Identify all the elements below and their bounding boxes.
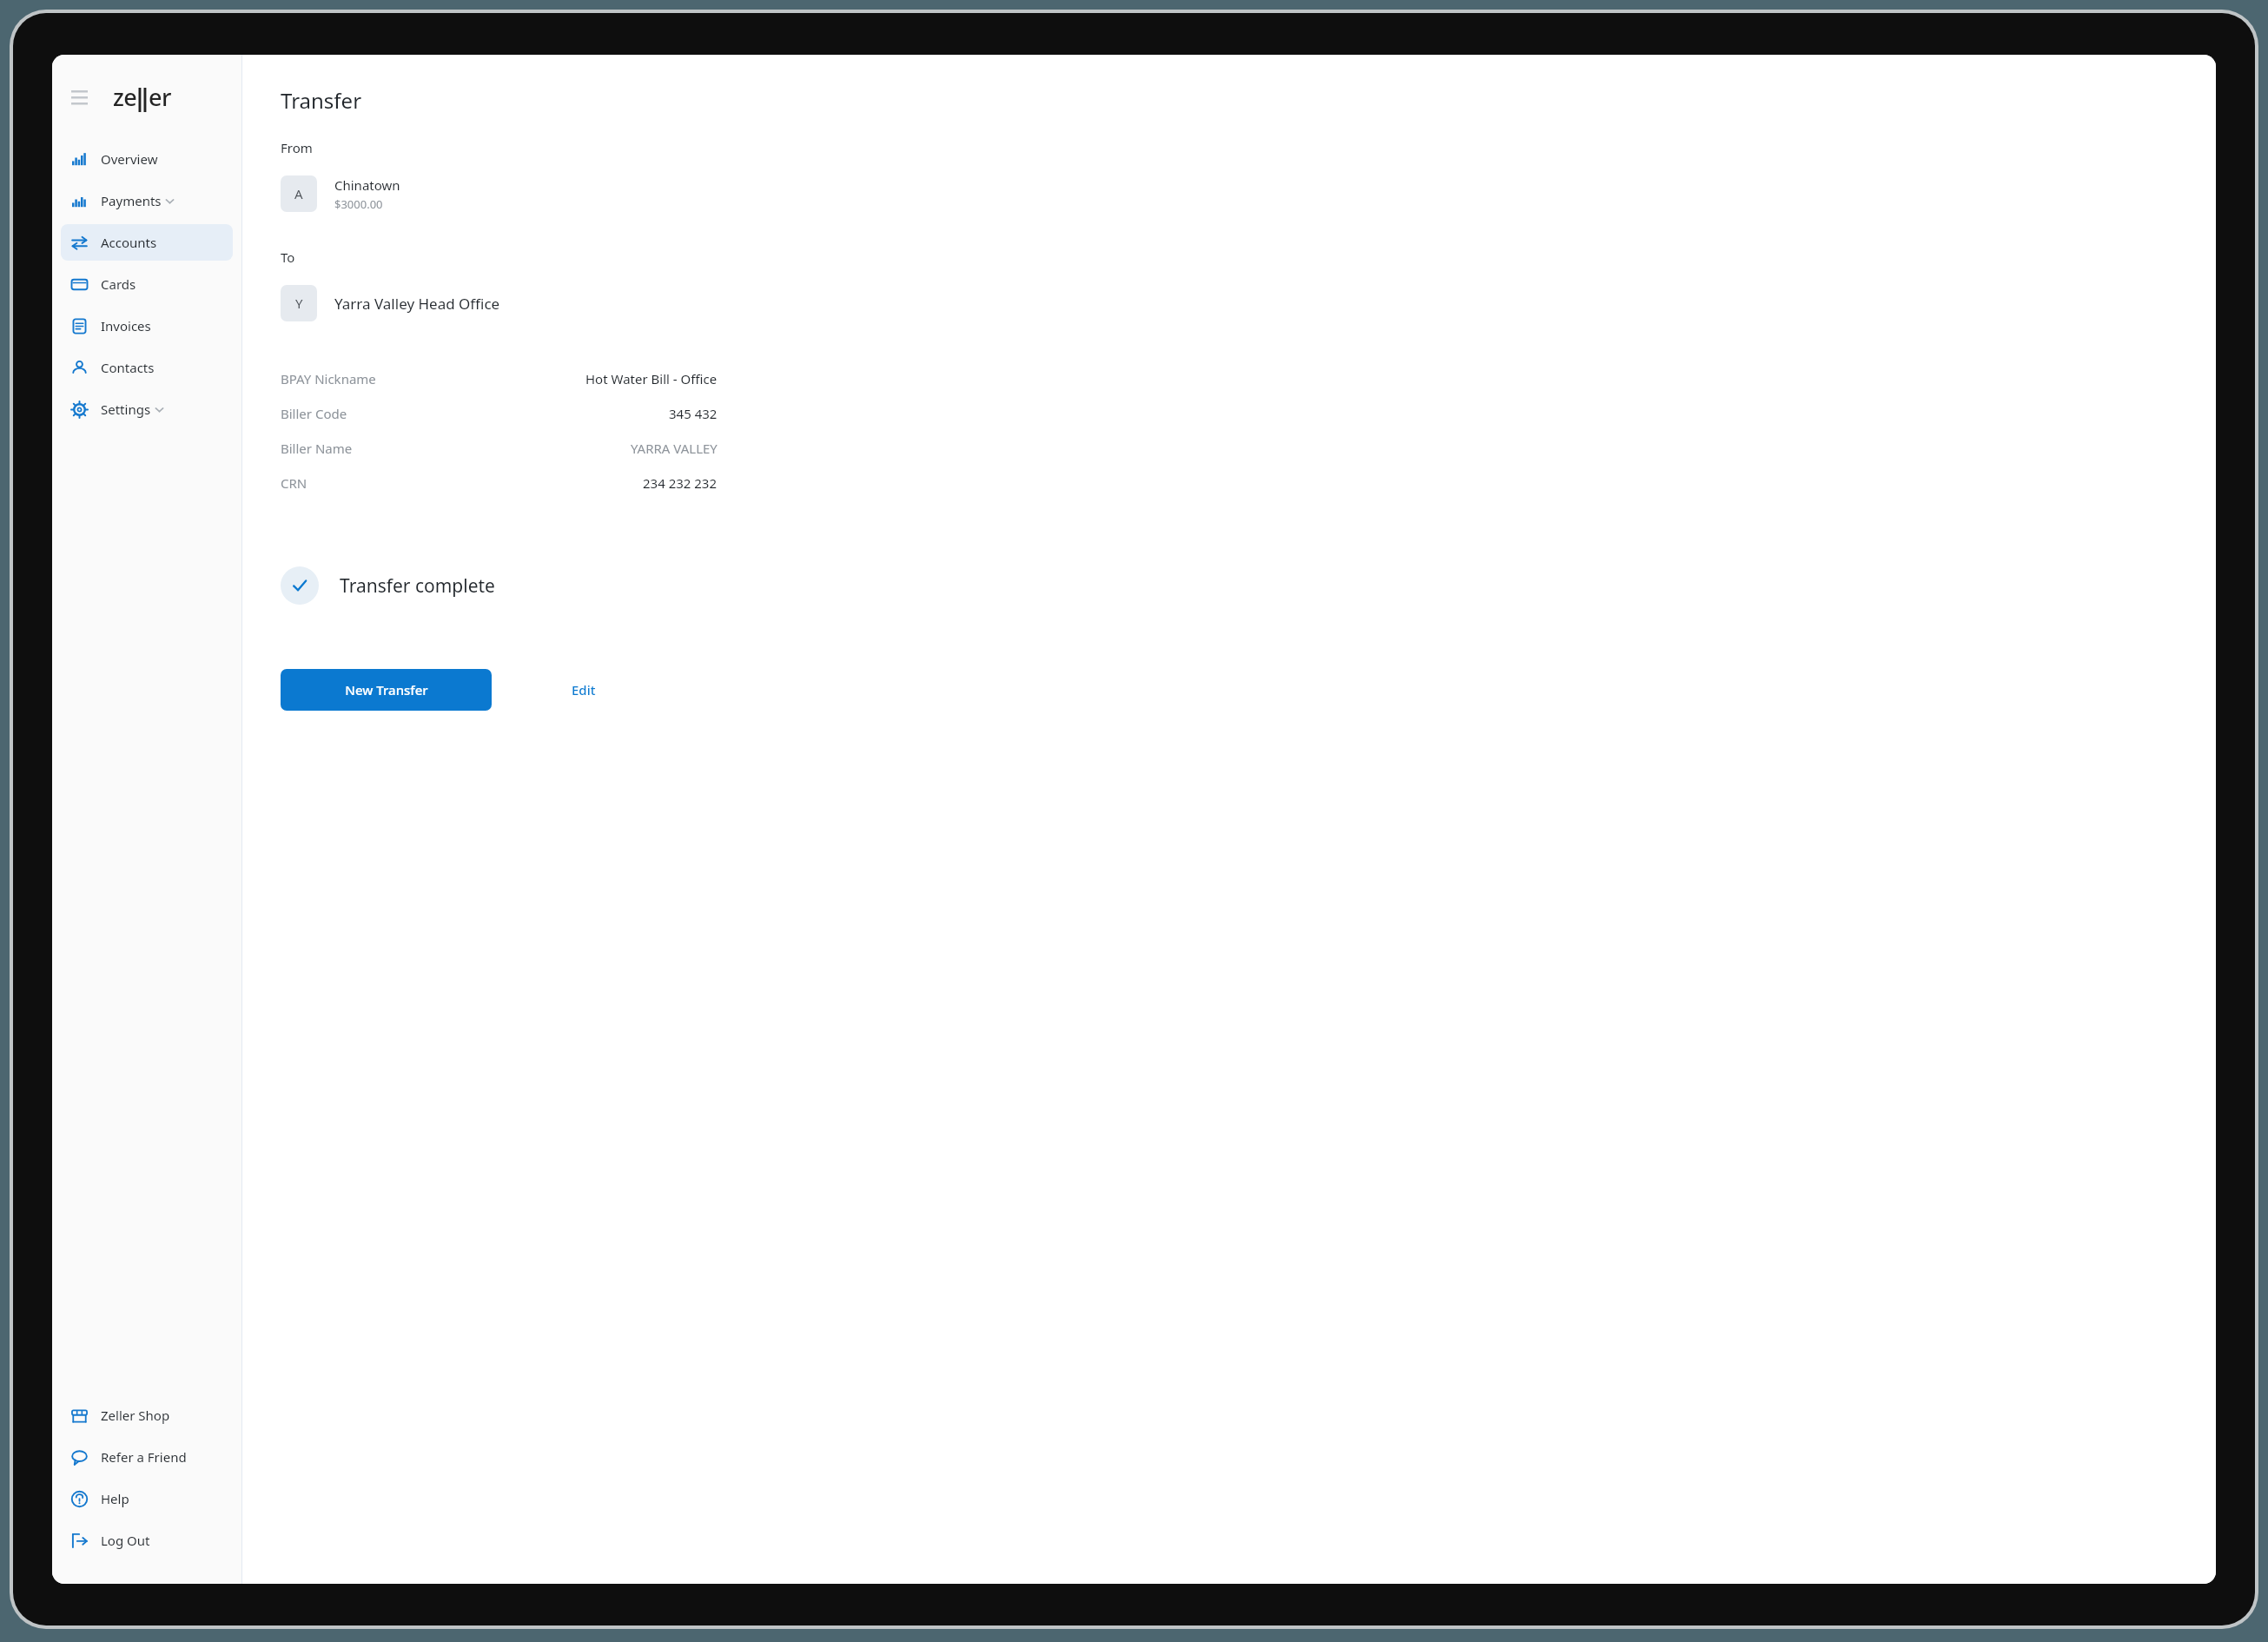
staticText: Biller Name [281,440,353,457]
staticText: YARRA VALLEY [631,440,717,457]
button[interactable]: Help [61,1480,233,1517]
staticText: Contacts [101,359,155,376]
staticText: Invoices [101,317,151,334]
staticText: BPAY Nickname [281,370,376,387]
staticText: 345 432 [669,405,717,422]
staticText: 234 232 232 [643,474,717,492]
staticText: Overview [101,150,158,168]
staticText: Hot Water Bill - Office [585,370,717,387]
staticText: er [149,81,171,113]
staticText: Cards [101,275,136,293]
staticText: Refer a Friend [101,1448,187,1466]
button[interactable]: Refer a Friend [61,1439,233,1475]
button[interactable]: Log Out [61,1522,233,1559]
button[interactable]: Menu [64,82,94,111]
staticText: Zeller Shop [101,1407,170,1424]
staticText: Payments [101,192,162,209]
button[interactable]: Zeller Shop [61,1397,233,1433]
staticText: Y [295,295,303,312]
staticText: Accounts [101,234,157,251]
staticText: $3000.00 [334,196,383,212]
staticText: Biller Code [281,405,347,422]
button[interactable]: Payments [61,182,233,219]
staticText: ze [113,81,137,113]
button[interactable]: New Transfer [281,669,492,711]
button[interactable]: Contacts [61,349,233,386]
staticText: Transfer [281,86,362,115]
button[interactable]: Edit [559,672,608,707]
staticText: Edit [572,681,596,699]
button[interactable]: Accounts [61,224,233,261]
button[interactable]: Settings [61,391,233,427]
staticText: A [294,185,303,202]
staticText: Log Out [101,1532,150,1549]
button[interactable]: Overview [61,141,233,177]
staticText: CRN [281,474,307,492]
staticText: Help [101,1490,129,1507]
staticText: Settings [101,401,151,418]
button[interactable]: Invoices [61,308,233,344]
staticText: Yarra Valley Head Office [334,294,500,314]
staticText: From [281,139,313,156]
staticText: New Transfer [345,681,428,699]
staticText: Chinatown [334,176,400,194]
staticText: Transfer complete [340,573,495,599]
staticText: To [281,248,295,266]
button[interactable]: Cards [61,266,233,302]
